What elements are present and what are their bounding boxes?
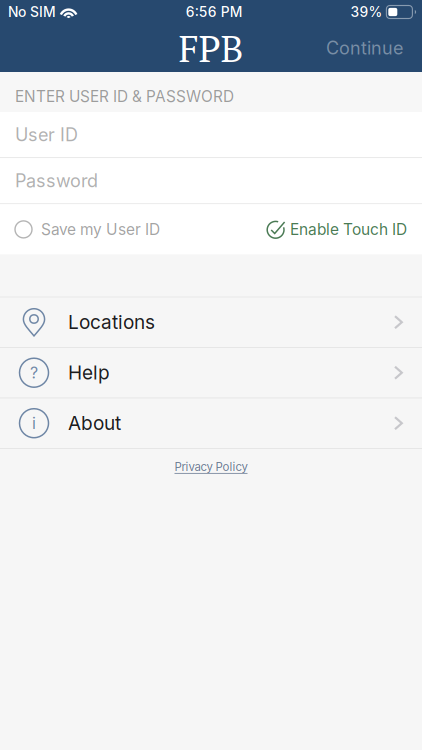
staticText: ? [30,363,38,382]
button[interactable]: Privacy Policy [174,449,247,474]
staticText: Continue [326,37,403,59]
button[interactable]: Password [0,158,422,203]
staticText: About [68,412,121,435]
staticText: FPB [178,23,243,73]
staticText: i [32,413,36,433]
staticText: Locations [68,311,155,334]
staticText: Privacy Policy [174,460,247,474]
button[interactable]: i [0,398,422,449]
button[interactable]: ? [0,348,422,398]
staticText: User ID [15,124,78,146]
staticText: Enable Touch ID [290,220,407,239]
staticText: Help [68,361,110,384]
staticText: ENTER USER ID & PASSWORD [15,87,234,106]
staticText: Save my User ID [41,220,160,239]
button[interactable]: Save my User ID [15,220,160,239]
button[interactable]: Continue [326,25,422,71]
staticText: Password [15,170,98,192]
staticText: No SIM [8,4,56,20]
staticText: 39% [350,4,382,20]
staticText: 6:56 PM [186,4,243,20]
button[interactable]: Enable Touch ID [266,219,407,239]
button[interactable]: Locations [0,297,422,348]
button[interactable]: User ID [0,112,422,157]
